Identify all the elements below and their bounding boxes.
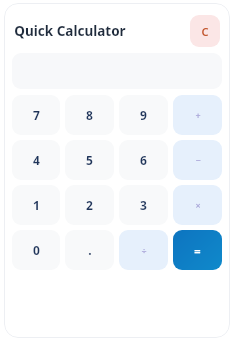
button[interactable]: 3 [119, 185, 168, 225]
button[interactable]: 7 [12, 95, 60, 135]
staticText: 0 [33, 242, 40, 258]
button[interactable]: 5 [65, 140, 114, 180]
staticText: − [195, 154, 201, 166]
staticText: 8 [86, 107, 93, 123]
staticText: 1 [33, 197, 40, 213]
button[interactable]: 0 [12, 230, 60, 270]
staticText: 3 [140, 197, 147, 213]
button[interactable]: 6 [119, 140, 168, 180]
staticText: Quick Calculator [14, 22, 126, 40]
button[interactable]: = [173, 230, 222, 270]
button[interactable]: 1 [12, 185, 60, 225]
button[interactable]: × [173, 185, 222, 225]
button[interactable]: 9 [119, 95, 168, 135]
staticText: . [88, 242, 92, 258]
staticText: 4 [33, 152, 40, 168]
staticText: = [194, 243, 201, 258]
button[interactable]: Clear [190, 15, 220, 47]
staticText: × [195, 199, 201, 211]
button[interactable]: 4 [12, 140, 60, 180]
staticText: 9 [140, 107, 147, 123]
staticText: 6 [140, 152, 147, 168]
button[interactable]: 2 [65, 185, 114, 225]
button[interactable]: . [65, 230, 114, 270]
staticText: 7 [33, 107, 40, 123]
button[interactable]: 8 [65, 95, 114, 135]
button[interactable]: ÷ [119, 230, 168, 270]
button[interactable]: − [173, 140, 222, 180]
staticText: 2 [86, 197, 93, 213]
staticText: 5 [86, 152, 93, 168]
button[interactable]: + [173, 95, 222, 135]
staticText: ÷ [141, 244, 147, 256]
staticText: C [201, 24, 209, 39]
staticText: + [195, 109, 201, 121]
